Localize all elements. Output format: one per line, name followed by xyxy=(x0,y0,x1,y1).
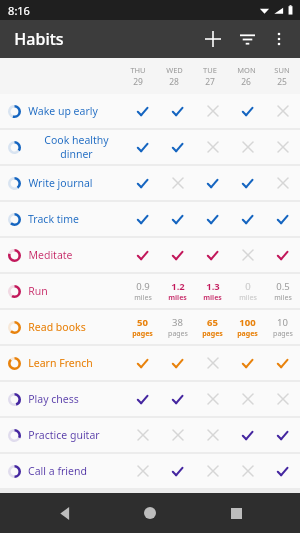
button[interactable]: Completed xyxy=(230,94,265,128)
staticText: 50 xyxy=(137,316,148,329)
button[interactable]: Completed xyxy=(265,454,300,488)
staticText: 10 xyxy=(277,316,288,329)
staticText: Wake up early xyxy=(28,104,98,118)
staticText: 1.3 xyxy=(206,280,220,293)
button[interactable]: Not completed xyxy=(195,382,230,416)
button[interactable]: Back xyxy=(44,493,86,533)
button[interactable]: Not completed xyxy=(265,130,300,164)
staticText: Practice guitar xyxy=(28,428,100,442)
staticText: pages xyxy=(273,329,293,339)
button[interactable]: Completed xyxy=(160,94,195,128)
button[interactable]: Completed xyxy=(160,382,195,416)
button[interactable]: Completed xyxy=(265,238,300,272)
button[interactable]: Completed xyxy=(195,238,230,272)
button[interactable]: Not completed xyxy=(230,130,265,164)
button[interactable]: Completed xyxy=(125,94,160,128)
button[interactable]: Completed xyxy=(125,382,160,416)
staticText: 8:16 xyxy=(8,3,30,18)
staticText: pages xyxy=(202,329,223,339)
button[interactable]: Not completed xyxy=(265,94,300,128)
staticText: 25 xyxy=(277,76,287,88)
button[interactable]: Not completed xyxy=(265,382,300,416)
button[interactable]: Completed xyxy=(265,202,300,236)
button[interactable]: More options xyxy=(264,24,294,54)
button[interactable]: Filter xyxy=(230,22,264,56)
button[interactable]: Completed xyxy=(195,202,230,236)
staticText: Write journal xyxy=(28,176,93,190)
staticText: Play chess xyxy=(28,392,79,406)
button[interactable]: Read books xyxy=(0,310,300,344)
button[interactable]: Not completed xyxy=(230,454,265,488)
button[interactable]: Home xyxy=(129,493,171,533)
button[interactable]: Completed xyxy=(125,166,160,200)
button[interactable]: Track time xyxy=(0,202,300,236)
button[interactable]: Completed xyxy=(230,202,265,236)
staticText: Learn French xyxy=(28,356,93,370)
staticText: 26 xyxy=(241,76,251,88)
button[interactable]: Completed xyxy=(230,418,265,452)
button[interactable]: Completed xyxy=(265,418,300,452)
staticText: TUE xyxy=(203,65,217,75)
button[interactable]: Completed xyxy=(125,238,160,272)
button[interactable]: Wake up early xyxy=(0,94,300,128)
button[interactable]: Not completed xyxy=(230,382,265,416)
button[interactable]: Recents xyxy=(215,493,257,533)
staticText: 29 xyxy=(133,76,143,88)
button[interactable]: Learn French xyxy=(0,346,300,380)
staticText: Track time xyxy=(28,212,79,226)
staticText: 1.2 xyxy=(171,280,185,293)
staticText: MON xyxy=(237,65,256,75)
button[interactable]: Add habit xyxy=(196,22,230,56)
button[interactable]: Completed xyxy=(195,166,230,200)
button[interactable]: Meditate xyxy=(0,238,300,272)
staticText: THU xyxy=(130,65,146,75)
button[interactable]: Not completed xyxy=(195,454,230,488)
button[interactable]: Write journal xyxy=(0,166,300,200)
staticText: 0 xyxy=(245,280,251,293)
staticText: 27 xyxy=(205,76,215,88)
button[interactable]: Not completed xyxy=(160,166,195,200)
button[interactable]: Not completed xyxy=(230,238,265,272)
button[interactable]: Practice guitar xyxy=(0,418,300,452)
button[interactable]: Completed xyxy=(160,454,195,488)
staticText: 100 xyxy=(239,316,256,329)
button[interactable]: Completed xyxy=(230,166,265,200)
button[interactable]: Not completed xyxy=(195,346,230,380)
button[interactable]: Cook healthy dinner xyxy=(0,130,300,164)
button[interactable]: Completed xyxy=(125,130,160,164)
button[interactable]: Not completed xyxy=(265,166,300,200)
staticText: miles xyxy=(134,293,152,303)
staticText: Habits xyxy=(14,28,64,50)
button[interactable]: Not completed xyxy=(160,418,195,452)
button[interactable]: Not completed xyxy=(125,454,160,488)
button[interactable]: Completed xyxy=(125,202,160,236)
staticText: 65 xyxy=(207,316,218,329)
staticText: miles xyxy=(168,293,187,303)
staticText: Call a friend xyxy=(28,464,87,478)
button[interactable]: Completed xyxy=(265,346,300,380)
button[interactable]: Not completed xyxy=(125,418,160,452)
button[interactable]: Completed xyxy=(160,130,195,164)
button[interactable]: Not completed xyxy=(195,418,230,452)
button[interactable]: Completed xyxy=(160,202,195,236)
staticText: 0.9 xyxy=(136,280,150,293)
staticText: 28 xyxy=(169,76,179,88)
button[interactable]: Not completed xyxy=(195,94,230,128)
button[interactable]: Call a friend xyxy=(0,454,300,488)
staticText: Meditate xyxy=(28,248,73,262)
staticText: miles xyxy=(274,293,292,303)
staticText: pages xyxy=(168,329,188,339)
staticText: pages xyxy=(132,329,153,339)
button[interactable]: Completed xyxy=(125,346,160,380)
staticText: miles xyxy=(239,293,257,303)
button[interactable]: Completed xyxy=(160,238,195,272)
button[interactable]: Run xyxy=(0,274,300,308)
button[interactable]: Not completed xyxy=(195,130,230,164)
button[interactable]: Completed xyxy=(230,346,265,380)
staticText: Read books xyxy=(28,320,86,334)
staticText: SUN xyxy=(274,65,290,75)
staticText: WED xyxy=(166,65,183,75)
staticText: Run xyxy=(28,284,48,298)
button[interactable]: Completed xyxy=(160,346,195,380)
button[interactable]: Play chess xyxy=(0,382,300,416)
